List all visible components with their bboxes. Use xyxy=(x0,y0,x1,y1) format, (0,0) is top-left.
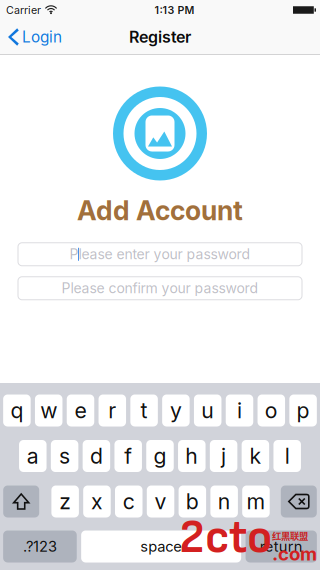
staticText: f xyxy=(124,443,132,469)
button[interactable]: c xyxy=(115,485,142,517)
staticText: Login xyxy=(22,28,62,46)
staticText: .?123 xyxy=(23,538,57,555)
button[interactable]: o xyxy=(258,394,285,426)
button[interactable]: s xyxy=(51,440,78,472)
staticText: d xyxy=(90,443,103,469)
button[interactable]: z xyxy=(51,485,79,517)
staticText: t xyxy=(141,398,148,423)
button[interactable]: i xyxy=(226,394,253,426)
staticText: p xyxy=(297,398,310,423)
staticText: n xyxy=(218,489,231,514)
staticText: b xyxy=(186,489,199,514)
staticText: e xyxy=(74,398,86,423)
button[interactable]: space xyxy=(81,530,241,562)
button[interactable]: return xyxy=(246,530,317,562)
button[interactable]: Shift xyxy=(3,485,39,517)
button[interactable]: w xyxy=(35,394,62,426)
button[interactable]: e xyxy=(67,394,94,426)
staticText: 1:13 PM xyxy=(154,3,194,16)
staticText: Please confirm your password xyxy=(61,280,258,297)
staticText: q xyxy=(10,398,23,423)
button[interactable]: f xyxy=(114,440,142,472)
staticText: y xyxy=(170,398,182,423)
button[interactable]: Please enter your password xyxy=(18,243,302,266)
staticText: 2cto xyxy=(179,510,272,566)
button[interactable]: u xyxy=(194,394,221,426)
button[interactable]: p xyxy=(289,394,317,426)
staticText: o xyxy=(265,398,278,423)
staticText: a xyxy=(27,443,39,469)
staticText: s xyxy=(59,443,70,469)
button[interactable]: l xyxy=(273,440,301,472)
button[interactable]: h xyxy=(178,440,206,472)
button[interactable]: k xyxy=(242,440,269,472)
button[interactable]: y xyxy=(162,394,190,426)
button[interactable]: g xyxy=(146,440,174,472)
button[interactable]: d xyxy=(83,440,110,472)
button[interactable]: Delete xyxy=(281,485,317,517)
staticText: v xyxy=(155,489,167,514)
button[interactable]: q xyxy=(3,394,31,426)
button[interactable]: .?123 xyxy=(3,530,77,562)
staticText: g xyxy=(153,443,166,469)
button[interactable]: n xyxy=(210,485,238,517)
staticText: 红黑联盟 xyxy=(272,529,308,542)
button[interactable]: j xyxy=(210,440,237,472)
staticText: Carrier xyxy=(6,3,41,16)
staticText: c xyxy=(123,489,135,514)
button[interactable]: m xyxy=(242,485,270,517)
staticText: Add Account xyxy=(77,194,243,227)
staticText: u xyxy=(201,398,214,423)
staticText: Please enter your password xyxy=(69,246,250,263)
staticText: z xyxy=(59,489,71,514)
button[interactable]: Login xyxy=(0,20,68,54)
staticText: m xyxy=(246,489,265,514)
staticText: h xyxy=(185,443,198,469)
staticText: x xyxy=(91,489,103,514)
staticText: .com xyxy=(272,542,317,565)
button[interactable]: x xyxy=(83,485,111,517)
staticText: j xyxy=(221,443,226,469)
staticText: return xyxy=(260,538,303,555)
button[interactable]: r xyxy=(99,394,126,426)
staticText: space xyxy=(140,538,182,555)
button[interactable]: Please confirm your password xyxy=(18,277,302,300)
staticText: k xyxy=(249,443,261,469)
staticText: w xyxy=(40,398,57,423)
button[interactable]: b xyxy=(179,485,206,517)
staticText: i xyxy=(237,398,242,423)
button[interactable]: v xyxy=(147,485,174,517)
staticText: r xyxy=(108,398,116,423)
staticText: Register xyxy=(129,27,191,47)
staticText: l xyxy=(285,443,290,469)
button[interactable]: a xyxy=(19,440,47,472)
button[interactable]: t xyxy=(130,394,158,426)
